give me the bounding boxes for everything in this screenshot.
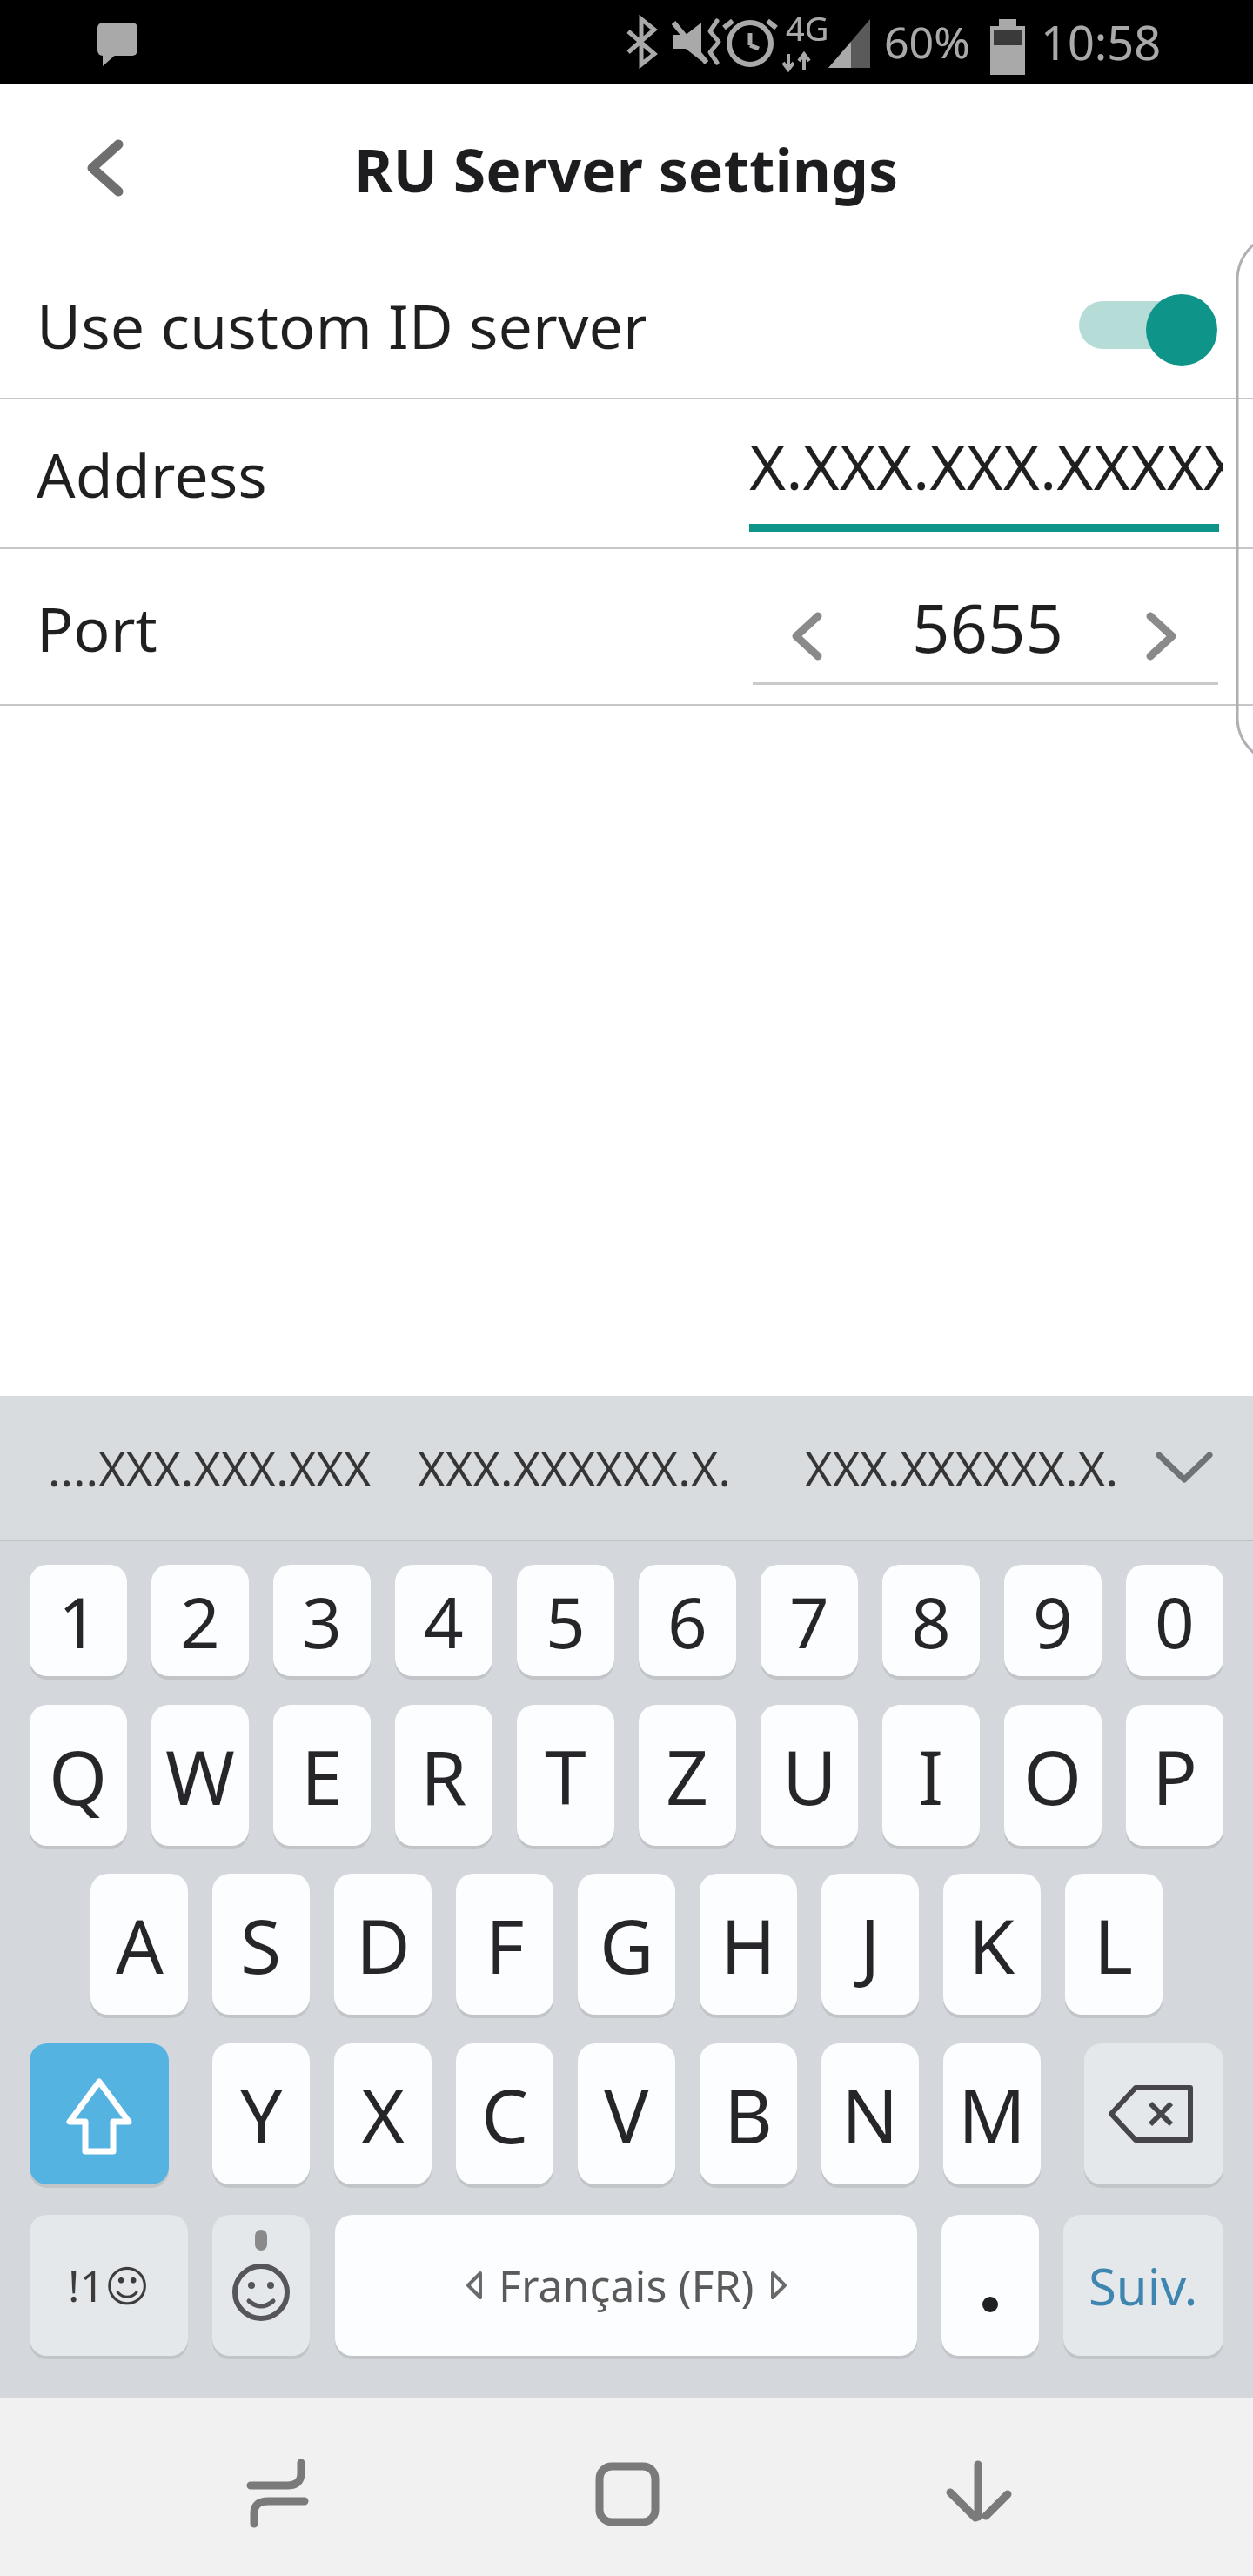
button[interactable]: H: [700, 1874, 797, 2015]
button[interactable]: [1084, 2043, 1223, 2184]
button[interactable]: Q: [30, 1705, 127, 1846]
button[interactable]: [1122, 600, 1201, 670]
button[interactable]: A: [90, 1874, 188, 2015]
button[interactable]: [209, 2415, 357, 2559]
button[interactable]: C: [456, 2043, 553, 2184]
button[interactable]: [766, 600, 844, 670]
button[interactable]: W: [151, 1705, 249, 1846]
staticText: W: [165, 1725, 235, 1827]
staticText: XXX.XXXXXX.X…: [805, 1436, 1118, 1500]
button[interactable]: X: [334, 2043, 432, 2184]
staticText: F: [486, 1894, 525, 1996]
staticText: Address: [37, 433, 267, 515]
staticText: A: [116, 1894, 164, 1996]
staticText: 3: [302, 1573, 342, 1668]
button[interactable]: U: [761, 1705, 858, 1846]
button[interactable]: ....XXX.XXX.XXX: [48, 1396, 379, 1540]
button[interactable]: V: [578, 2043, 675, 2184]
button[interactable]: L: [1065, 1874, 1163, 2015]
button[interactable]: [30, 2043, 169, 2184]
button[interactable]: N: [821, 2043, 919, 2184]
staticText: C: [481, 2063, 529, 2165]
button[interactable]: [941, 2215, 1039, 2356]
button[interactable]: D: [334, 1874, 432, 2015]
button[interactable]: 0: [1126, 1565, 1223, 1676]
staticText: X.XXX.XXX.XXXXX: [749, 423, 1223, 508]
staticText: Z: [666, 1725, 709, 1827]
staticText: !1☺: [68, 2256, 151, 2315]
button[interactable]: O: [1004, 1705, 1102, 1846]
staticText: X: [361, 2063, 405, 2165]
staticText: 4G: [786, 5, 829, 50]
staticText: 7: [789, 1573, 829, 1668]
staticText: 5655: [912, 582, 1063, 673]
button[interactable]: Suiv.: [1063, 2215, 1223, 2356]
staticText: RU Server settings: [354, 129, 899, 209]
button[interactable]: 6: [639, 1565, 736, 1676]
button[interactable]: [0, 399, 1253, 547]
button[interactable]: E: [273, 1705, 371, 1846]
button[interactable]: 2: [151, 1565, 249, 1676]
button[interactable]: G: [578, 1874, 675, 2015]
staticText: U: [782, 1725, 837, 1827]
button[interactable]: XXX.XXXXXX.X…: [418, 1396, 731, 1540]
button[interactable]: 4: [395, 1565, 492, 1676]
button[interactable]: [1131, 1419, 1236, 1523]
staticText: 1: [58, 1573, 98, 1668]
button[interactable]: P: [1126, 1705, 1223, 1846]
button[interactable]: R: [395, 1705, 492, 1846]
staticText: Use custom ID server: [37, 284, 646, 366]
button[interactable]: [557, 2415, 705, 2559]
staticText: P: [1152, 1725, 1198, 1827]
button[interactable]: M: [943, 2043, 1041, 2184]
button[interactable]: 3: [273, 1565, 371, 1676]
button[interactable]: K: [943, 1874, 1041, 2015]
staticText: J: [860, 1894, 881, 1996]
staticText: Y: [240, 2063, 283, 2165]
staticText: G: [600, 1894, 654, 1996]
button[interactable]: [905, 2415, 1053, 2559]
staticText: I: [918, 1725, 944, 1827]
staticText: 9: [1033, 1573, 1073, 1668]
staticText: K: [968, 1894, 1015, 1996]
staticText: 8: [911, 1573, 951, 1668]
staticText: V: [604, 2063, 649, 2165]
button[interactable]: 5: [517, 1565, 614, 1676]
button[interactable]: Z: [639, 1705, 736, 1846]
staticText: M: [958, 2063, 1027, 2165]
button[interactable]: [1146, 294, 1217, 366]
staticText: 2: [180, 1573, 220, 1668]
button[interactable]: S: [212, 1874, 310, 2015]
button[interactable]: F: [456, 1874, 553, 2015]
staticText: Français (FR): [499, 2256, 754, 2315]
staticText: Q: [49, 1725, 108, 1827]
button[interactable]: XXX.XXXXXX.X…: [805, 1396, 1118, 1540]
button[interactable]: [52, 126, 157, 213]
button[interactable]: T: [517, 1705, 614, 1846]
staticText: 60%: [884, 12, 970, 71]
staticText: 5: [546, 1573, 586, 1668]
button[interactable]: [0, 549, 1253, 706]
button[interactable]: [335, 2215, 917, 2356]
button[interactable]: B: [700, 2043, 797, 2184]
button[interactable]: J: [821, 1874, 919, 2015]
button[interactable]: 7: [761, 1565, 858, 1676]
staticText: 6: [667, 1573, 707, 1668]
button[interactable]: [0, 251, 1253, 399]
button[interactable]: 1: [30, 1565, 127, 1676]
staticText: B: [724, 2063, 773, 2165]
button[interactable]: [212, 2215, 310, 2356]
staticText: ....XXX.XXX.XXX: [48, 1436, 372, 1500]
button[interactable]: !1☺: [30, 2215, 188, 2356]
staticText: N: [841, 2063, 899, 2165]
staticText: 4: [424, 1573, 464, 1668]
button[interactable]: I: [882, 1705, 980, 1846]
staticText: 10:58: [1041, 10, 1162, 74]
staticText: Port: [37, 587, 157, 669]
staticText: Suiv.: [1089, 2251, 1198, 2320]
button[interactable]: 9: [1004, 1565, 1102, 1676]
button[interactable]: Y: [212, 2043, 310, 2184]
staticText: D: [356, 1894, 411, 1996]
button[interactable]: 8: [882, 1565, 980, 1676]
staticText: E: [301, 1725, 343, 1827]
